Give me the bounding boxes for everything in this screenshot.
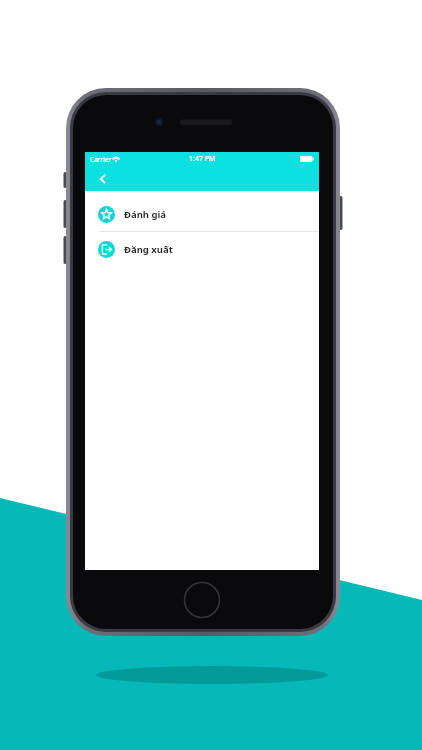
staticText: 1:47 PM bbox=[189, 154, 216, 164]
staticText: Đăng xuất bbox=[124, 243, 173, 256]
button[interactable]: Đăng xuất bbox=[85, 232, 319, 266]
staticText: Carrier bbox=[90, 155, 112, 164]
button[interactable]: Back bbox=[91, 167, 115, 191]
button[interactable]: Đánh giá bbox=[85, 197, 319, 231]
staticText: Đánh giá bbox=[124, 208, 166, 221]
